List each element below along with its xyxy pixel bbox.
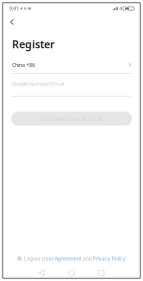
button[interactable]: Back [3,15,140,29]
button[interactable]: Agree to terms [18,257,21,260]
button[interactable]: Back [39,270,44,276]
staticText: 4G [119,5,126,12]
staticText: China +86 [12,61,35,69]
button[interactable]: User Agreement [41,255,81,262]
button[interactable]: GET VERIFICATION CODE [11,112,132,126]
staticText: I agree [23,255,41,262]
staticText: User Agreement [41,255,81,262]
staticText: Mobile Number/Email [12,80,64,87]
staticText: Privacy Policy [92,255,125,262]
button[interactable]: Privacy Policy [92,255,125,262]
staticText: GET VERIFICATION CODE [41,115,102,122]
button[interactable]: China +86 [3,61,140,74]
staticText: 9:41 [9,5,19,12]
staticText: and [81,255,92,262]
staticText: Register [12,37,55,51]
button[interactable]: Home [68,270,74,276]
button[interactable]: Recents [98,270,104,276]
